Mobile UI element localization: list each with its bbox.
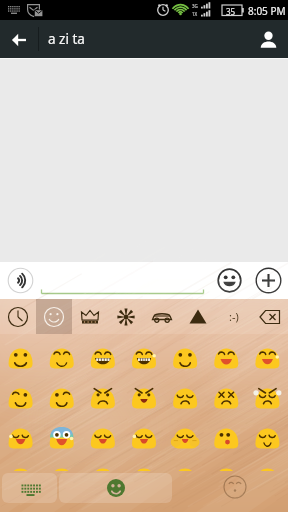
button[interactable]: Tab tri	[180, 299, 216, 334]
button[interactable]: Add attachment	[248, 262, 288, 299]
button[interactable]: Emoji 12	[165, 374, 206, 414]
button[interactable]: Tab crown	[72, 299, 108, 334]
button[interactable]: Back	[0, 20, 38, 58]
button[interactable]: Emoji 1	[0, 334, 42, 374]
button[interactable]: Emoji 23	[42, 454, 83, 471]
button[interactable]: Emoji 11	[124, 374, 165, 414]
button[interactable]: Emoji 26	[165, 454, 206, 471]
button[interactable]: Emoji 27	[206, 454, 247, 471]
button[interactable]: Emoji 17	[83, 414, 124, 454]
button[interactable]: Emoji 9	[42, 374, 83, 414]
button[interactable]: Emoji 25	[124, 454, 165, 471]
button[interactable]: Tab smile	[36, 299, 72, 334]
button[interactable]: Contact details	[248, 20, 288, 58]
button[interactable]: Voice message	[0, 262, 40, 299]
button[interactable]: Emoji 15	[0, 414, 42, 454]
button[interactable]: Emoji 14	[247, 374, 288, 414]
button[interactable]: Emoji 20	[206, 414, 247, 454]
button[interactable]: Tab clock	[0, 299, 36, 334]
staticText: 3G	[192, 3, 198, 9]
button[interactable]: Tab car	[144, 299, 180, 334]
button[interactable]: Emoji 7	[247, 334, 288, 374]
staticText: 1X	[192, 11, 198, 17]
button[interactable]: Emoji 4	[124, 334, 165, 374]
button[interactable]: Emoji 24	[83, 454, 124, 471]
button[interactable]: Emoji 5	[165, 334, 206, 374]
button[interactable]: Switch to keyboard	[2, 473, 57, 503]
button[interactable]: Emoji 8	[0, 374, 42, 414]
button[interactable]: Tab flower	[108, 299, 144, 334]
button[interactable]: Emoji 10	[83, 374, 124, 414]
button[interactable]: Emoji 3	[83, 334, 124, 374]
button[interactable]: Emoji 18	[124, 414, 165, 454]
button[interactable]: Tab text	[216, 299, 252, 334]
staticText: 8:05 PM	[248, 4, 286, 18]
button[interactable]: Emoji 13	[206, 374, 247, 414]
staticText: :-)	[229, 309, 239, 324]
button[interactable]: Emoji 16	[42, 414, 83, 454]
button[interactable]: Emoji 6	[206, 334, 247, 374]
button[interactable]	[40, 262, 205, 299]
button[interactable]: Emoji 2	[42, 334, 83, 374]
button[interactable]: Emoji 22	[0, 454, 42, 471]
staticText: a zi ta	[48, 30, 85, 48]
button[interactable]: Tab del	[252, 299, 288, 334]
button[interactable]: Space	[59, 473, 172, 503]
staticText: 35	[226, 6, 236, 17]
button[interactable]: Emoji 28	[247, 454, 288, 471]
button[interactable]: Emoji 19	[165, 414, 206, 454]
button[interactable]: Emoji 21	[247, 414, 288, 454]
button[interactable]: Emoji	[211, 262, 248, 299]
